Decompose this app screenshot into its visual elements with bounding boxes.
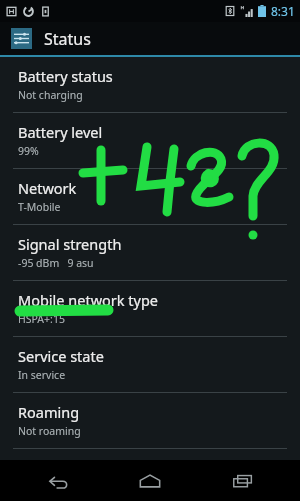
staticText: Battery status [18, 66, 113, 86]
button[interactable]: Battery level [0, 112, 300, 168]
button[interactable]: Network [0, 168, 300, 224]
staticText: Battery level [18, 122, 103, 142]
staticText: Status [44, 28, 91, 50]
staticText: HSPA+:15 [18, 312, 65, 326]
staticText: Network [18, 178, 77, 198]
button[interactable]: App icon [11, 28, 32, 49]
staticText: Roaming [18, 402, 80, 422]
staticText: -95 dBm 9 asu [18, 256, 94, 270]
button[interactable]: Signal strength [0, 224, 300, 280]
button[interactable]: Mobile network state [0, 448, 300, 460]
button[interactable]: Recent apps [208, 460, 278, 501]
button[interactable]: Service state [0, 336, 300, 392]
staticText: Mobile network type [18, 290, 159, 310]
staticText: T-Mobile [18, 200, 61, 214]
staticText: 99% [18, 144, 39, 158]
staticText: Signal strength [18, 234, 122, 254]
button[interactable]: Back [23, 460, 93, 501]
button[interactable]: Mobile network type [0, 280, 300, 336]
button[interactable]: Home [115, 460, 185, 501]
button[interactable]: Battery status [0, 57, 300, 112]
staticText: Not roaming [18, 424, 81, 438]
button[interactable]: Roaming [0, 392, 300, 448]
staticText: Not charging [18, 88, 83, 102]
staticText: 8:31 [271, 3, 295, 19]
staticText: Service state [18, 346, 104, 366]
staticText: In service [18, 368, 66, 382]
